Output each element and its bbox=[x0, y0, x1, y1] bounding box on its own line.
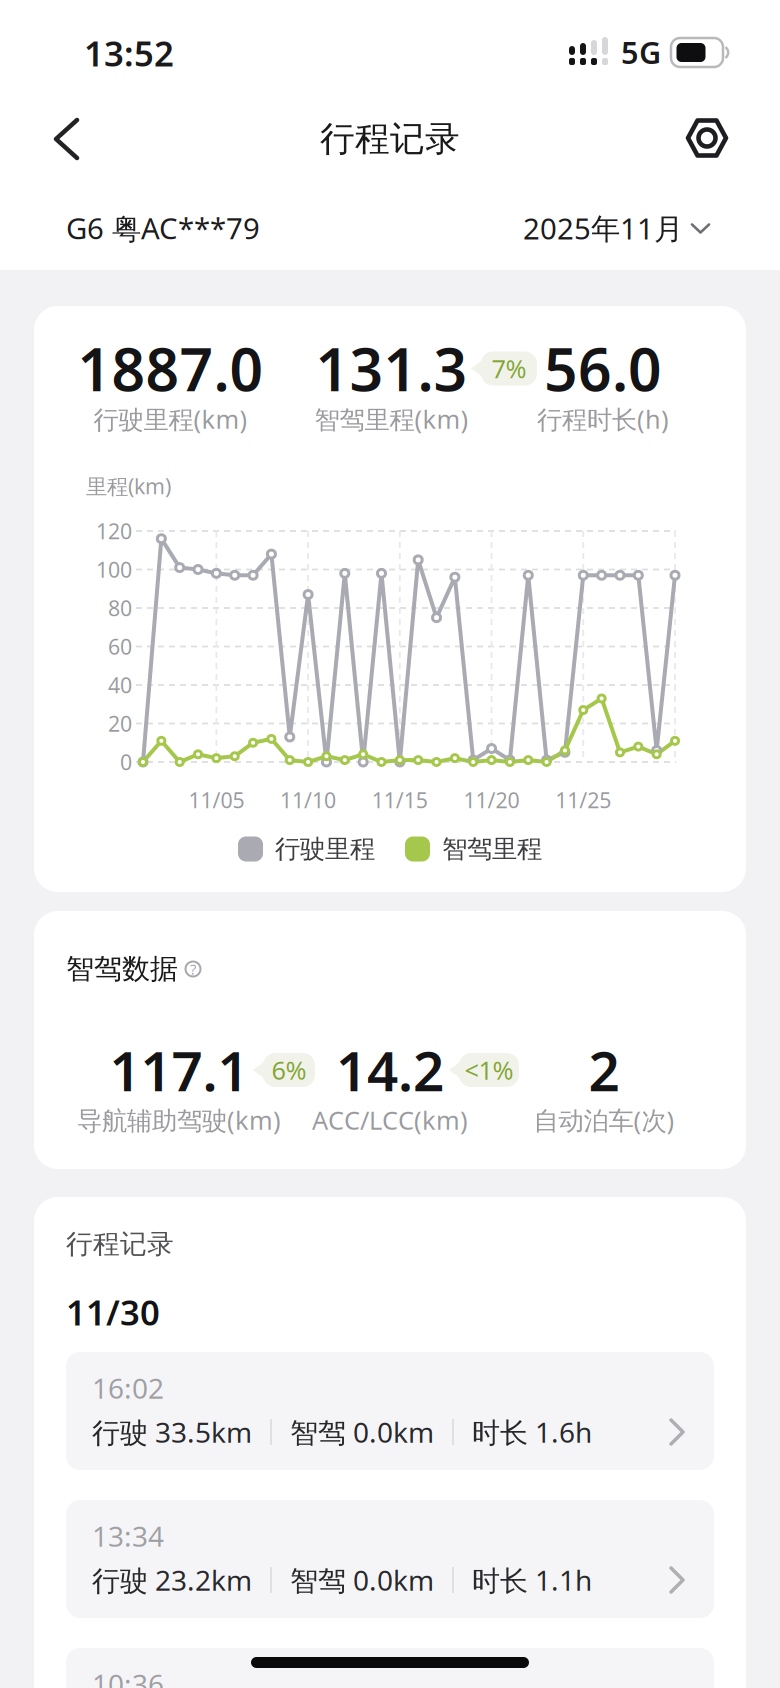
button[interactable]: 16:02 bbox=[66, 1352, 714, 1470]
staticText: 13:34 bbox=[92, 1517, 164, 1555]
button[interactable]: ? bbox=[183, 959, 203, 979]
staticText: 11/20 bbox=[464, 786, 520, 814]
staticText: 里程(km) bbox=[86, 472, 171, 500]
staticText: 11/30 bbox=[66, 1289, 160, 1335]
staticText: 智驾里程(km) bbox=[314, 402, 468, 436]
staticText: 16:02 bbox=[92, 1369, 164, 1407]
staticText: 5G bbox=[621, 32, 661, 72]
button[interactable] bbox=[40, 106, 100, 172]
staticText: 14.2 bbox=[336, 1034, 444, 1106]
button[interactable]: 13:34 bbox=[66, 1500, 714, 1618]
staticText: 13:52 bbox=[84, 30, 174, 76]
staticText: 117.1 bbox=[109, 1034, 248, 1106]
button[interactable]: 2025年11月 bbox=[450, 208, 710, 247]
staticText: 11/05 bbox=[188, 786, 244, 814]
staticText: 20 bbox=[108, 709, 132, 738]
staticText: 0 bbox=[120, 748, 132, 776]
staticText: 时长 1.6h bbox=[472, 1413, 592, 1451]
staticText: 1887.0 bbox=[77, 329, 263, 407]
staticText: 80 bbox=[108, 594, 132, 622]
staticText: 120 bbox=[96, 517, 132, 545]
staticText: 智驾 0.0km bbox=[290, 1561, 434, 1599]
staticText: <1% bbox=[464, 1053, 513, 1087]
staticText: 2 bbox=[588, 1034, 619, 1106]
staticText: 自动泊车(次) bbox=[533, 1103, 674, 1137]
staticText: 智驾里程 bbox=[442, 833, 542, 864]
staticText: 11/15 bbox=[372, 786, 428, 814]
staticText: 行程记录 bbox=[320, 118, 460, 160]
staticText: 100 bbox=[96, 555, 132, 584]
staticText: ACC/LCC(km) bbox=[312, 1103, 468, 1137]
staticText: G6 粤AC***79 bbox=[66, 208, 260, 247]
staticText: 11/10 bbox=[280, 786, 336, 814]
staticText: 11/25 bbox=[555, 786, 611, 814]
staticText: 7% bbox=[491, 352, 526, 385]
staticText: 行驶 33.5km bbox=[92, 1413, 252, 1451]
staticText: 时长 1.1h bbox=[472, 1561, 592, 1599]
staticText: ? bbox=[190, 959, 196, 979]
staticText: 行程时长(h) bbox=[537, 402, 669, 436]
staticText: 56.0 bbox=[544, 329, 662, 407]
staticText: 行驶 23.2km bbox=[92, 1561, 252, 1599]
staticText: 行程记录 bbox=[66, 1228, 174, 1260]
staticText: 60 bbox=[108, 632, 132, 661]
staticText: 131.3 bbox=[315, 329, 467, 407]
staticText: 智驾 0.0km bbox=[290, 1413, 434, 1451]
staticText: 智驾数据 bbox=[66, 952, 178, 986]
staticText: 10:36 bbox=[92, 1665, 164, 1688]
staticText: 6% bbox=[271, 1053, 306, 1087]
staticText: 行驶里程 bbox=[275, 833, 375, 864]
button[interactable] bbox=[677, 108, 737, 168]
staticText: 导航辅助驾驶(km) bbox=[77, 1103, 281, 1137]
staticText: 行驶里程(km) bbox=[93, 402, 247, 436]
button[interactable]: 10:36 bbox=[66, 1648, 714, 1688]
staticText: 2025年11月 bbox=[523, 208, 683, 247]
staticText: 40 bbox=[108, 671, 132, 699]
